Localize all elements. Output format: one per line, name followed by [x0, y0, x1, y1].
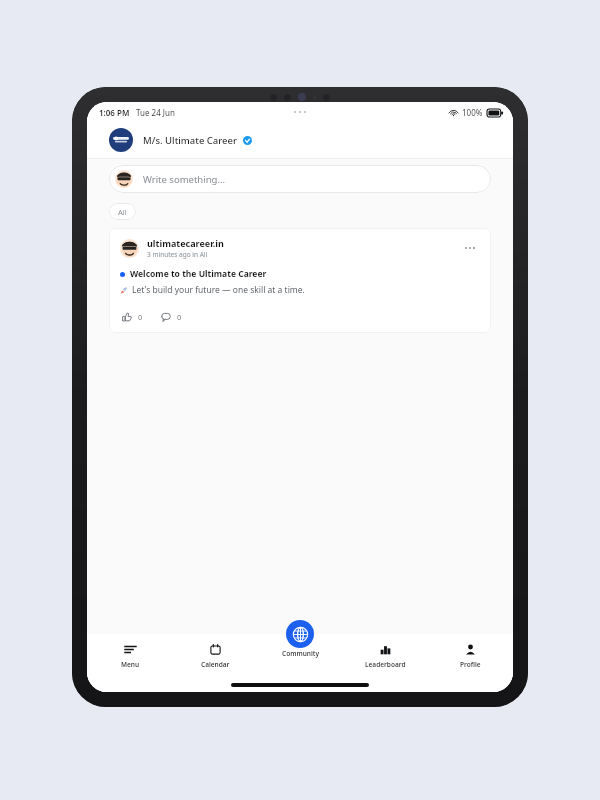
staticText: 0: [138, 312, 143, 322]
button[interactable]: Profile: [428, 638, 513, 678]
button[interactable]: Write something...: [109, 165, 491, 193]
button[interactable]: All: [109, 203, 136, 220]
staticText: Profile: [460, 660, 481, 669]
staticText: Community: [282, 649, 319, 658]
button[interactable]: Menu: [87, 638, 173, 678]
staticText: ultimatecareer.in: [147, 237, 224, 249]
staticText: Write something...: [143, 173, 226, 186]
staticText: 0: [177, 312, 182, 322]
button[interactable]: Leaderboard: [343, 638, 428, 678]
button[interactable]: 0: [120, 310, 145, 324]
staticText: 3 minutes ago in All: [147, 250, 208, 259]
staticText: Welcome to the Ultimate Career: [130, 268, 267, 280]
staticText: Let's build your future — one skill at a…: [132, 284, 305, 296]
staticText: Tue 24 Jun: [136, 107, 175, 118]
button[interactable]: 0: [159, 310, 184, 324]
staticText: Leaderboard: [365, 660, 406, 669]
staticText: Calendar: [201, 660, 230, 669]
button[interactable]: Ultimate Career logo: [109, 128, 133, 152]
button[interactable]: ultimatecareer.in: [109, 228, 491, 333]
staticText: 100%: [462, 107, 483, 118]
staticText: Menu: [121, 660, 140, 669]
staticText: M/s. Ultimate Career: [143, 134, 238, 147]
button[interactable]: Community: [286, 620, 314, 648]
button[interactable]: More options: [460, 238, 480, 258]
staticText: All: [118, 207, 127, 217]
button[interactable]: Calendar: [173, 638, 258, 678]
staticText: 1:06 PM: [99, 107, 130, 118]
